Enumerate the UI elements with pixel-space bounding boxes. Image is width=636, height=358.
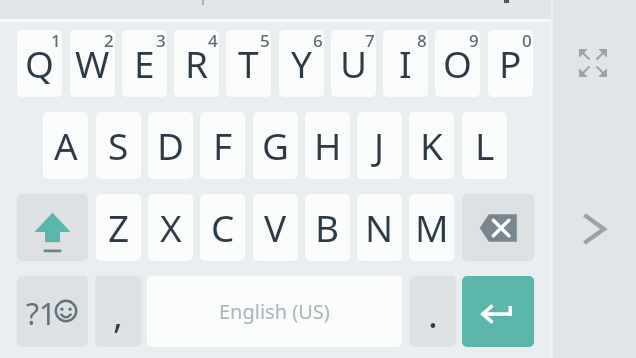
button[interactable]: B — [305, 194, 350, 261]
staticText: T — [238, 38, 259, 88]
staticText: P — [499, 38, 522, 88]
button[interactable]: ?1 — [17, 276, 88, 347]
staticText: M — [415, 202, 449, 252]
staticText: U — [340, 38, 368, 88]
button[interactable]: Expand keyboard — [579, 49, 607, 77]
staticText: D — [157, 120, 185, 170]
staticText: A — [54, 120, 78, 170]
button[interactable]: Shift — [17, 194, 88, 261]
staticText: ?1 — [26, 293, 57, 334]
button[interactable]: , — [95, 276, 141, 347]
staticText: 3 — [156, 30, 166, 52]
staticText: 9 — [469, 30, 479, 52]
button[interactable]: E — [122, 30, 167, 97]
staticText: H — [314, 120, 342, 170]
staticText: 7 — [365, 30, 375, 52]
button[interactable]: Enter — [462, 276, 534, 347]
staticText: E — [134, 38, 155, 88]
button[interactable]: F — [200, 112, 245, 179]
button[interactable]: X — [148, 194, 193, 261]
button[interactable]: W — [70, 30, 115, 97]
staticText: . — [428, 288, 438, 338]
staticText: F — [213, 120, 233, 170]
button[interactable]: T — [226, 30, 271, 97]
staticText: R — [185, 38, 209, 88]
button[interactable]: D — [148, 112, 193, 179]
staticText: J — [374, 120, 385, 170]
button[interactable]: I — [383, 30, 428, 97]
staticText: X — [160, 202, 182, 252]
button[interactable]: J — [357, 112, 402, 179]
button[interactable]: Next — [574, 204, 616, 254]
staticText: Y — [291, 38, 312, 88]
staticText: B — [315, 202, 340, 252]
staticText: C — [211, 202, 235, 252]
staticText: I — [399, 38, 412, 88]
button[interactable]: A — [43, 112, 88, 179]
button[interactable]: English (US) — [147, 276, 402, 347]
staticText: English (US) — [219, 298, 330, 325]
button[interactable]: C — [200, 194, 245, 261]
button[interactable]: Y — [279, 30, 324, 97]
staticText: 1 — [51, 30, 61, 52]
staticText: S — [108, 120, 129, 170]
button[interactable]: L — [462, 112, 507, 179]
staticText: V — [264, 202, 287, 252]
button[interactable]: Backspace — [462, 194, 534, 261]
staticText: 2 — [104, 30, 114, 52]
button[interactable]: U — [331, 30, 376, 97]
button[interactable]: Z — [96, 194, 141, 261]
button[interactable]: Q — [17, 30, 62, 97]
staticText: , — [113, 288, 123, 338]
staticText: K — [420, 120, 443, 170]
staticText: 4 — [208, 30, 218, 52]
staticText: 5 — [260, 30, 270, 52]
button[interactable]: R — [174, 30, 219, 97]
button[interactable]: . — [410, 276, 456, 347]
staticText: 0 — [522, 30, 532, 52]
button[interactable]: M — [409, 194, 454, 261]
button[interactable]: H — [305, 112, 350, 179]
staticText: L — [475, 120, 495, 170]
staticText: Z — [108, 202, 130, 252]
staticText: G — [262, 120, 289, 170]
button[interactable]: K — [409, 112, 454, 179]
staticText: N — [365, 202, 394, 252]
staticText: O — [443, 38, 472, 88]
button[interactable]: S — [96, 112, 141, 179]
button[interactable]: P — [488, 30, 533, 97]
button[interactable]: V — [253, 194, 298, 261]
button[interactable]: N — [357, 194, 402, 261]
staticText: 6 — [313, 30, 323, 52]
staticText: W — [75, 38, 110, 88]
button[interactable]: G — [253, 112, 298, 179]
button[interactable]: O — [435, 30, 480, 97]
staticText: Q — [25, 38, 54, 88]
staticText: 8 — [417, 30, 427, 52]
